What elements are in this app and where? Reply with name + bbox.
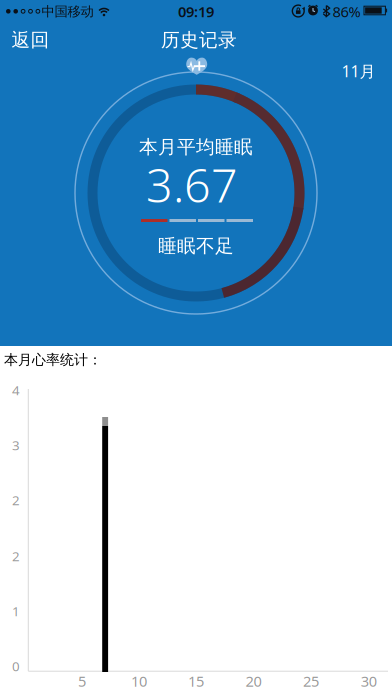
staticText: 25 [303, 671, 319, 691]
staticText: 4 [12, 381, 20, 399]
button[interactable]: 返回 [3, 20, 57, 59]
staticText: 历史记录 [161, 28, 237, 51]
staticText: 睡眠不足 [158, 234, 234, 257]
staticText: 本月心率统计： [4, 351, 102, 369]
staticText: 3.67 [146, 153, 238, 215]
staticText: 1 [12, 602, 20, 620]
staticText: 中国移动 [41, 3, 93, 20]
staticText: 2 [12, 547, 20, 565]
staticText: 10 [131, 671, 147, 691]
staticText: 09:19 [178, 2, 214, 21]
staticText: 5 [78, 671, 86, 691]
staticText: 30 [361, 671, 377, 691]
staticText: 3 [12, 436, 20, 454]
staticText: 返回 [11, 28, 49, 51]
staticText: 0 [12, 657, 20, 675]
staticText: 2 [12, 491, 20, 509]
staticText: 本月平均睡眠 [139, 135, 253, 158]
staticText: 11月 [341, 60, 375, 82]
staticText: 86% [332, 2, 360, 21]
staticText: 15 [188, 671, 204, 691]
staticText: 20 [245, 671, 261, 691]
